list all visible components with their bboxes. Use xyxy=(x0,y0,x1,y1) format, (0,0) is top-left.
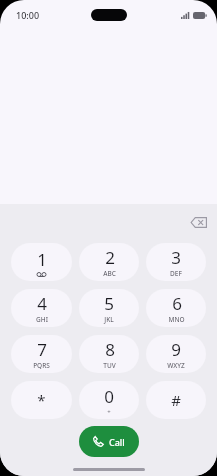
button[interactable]: 3 xyxy=(146,243,206,281)
staticText: MNO xyxy=(168,315,185,324)
staticText: TUV xyxy=(103,361,116,370)
staticText: 0 xyxy=(104,385,114,408)
staticText: 8 xyxy=(105,338,115,361)
button[interactable]: Backspace xyxy=(183,207,213,237)
staticText: GHI xyxy=(36,315,48,324)
button[interactable]: 9 xyxy=(146,335,206,373)
staticText: 6 xyxy=(172,292,182,315)
staticText: ABC xyxy=(103,269,116,278)
button[interactable]: # xyxy=(146,381,206,419)
staticText: Call xyxy=(109,436,125,448)
staticText: + xyxy=(107,408,111,416)
staticText: 7 xyxy=(37,338,47,361)
button[interactable]: 0 xyxy=(79,381,139,419)
staticText: WXYZ xyxy=(167,361,185,370)
staticText: 2 xyxy=(105,246,115,269)
button[interactable]: 1 xyxy=(11,243,72,281)
button[interactable]: Call xyxy=(79,426,139,457)
button[interactable]: * xyxy=(11,381,72,419)
staticText: 10:00 xyxy=(16,9,40,21)
button[interactable]: 4 xyxy=(11,289,72,327)
staticText: * xyxy=(37,390,46,410)
staticText: 4 xyxy=(37,292,47,315)
button[interactable]: 6 xyxy=(146,289,206,327)
button[interactable]: 5 xyxy=(79,289,139,327)
staticText: DEF xyxy=(170,269,182,278)
staticText: 9 xyxy=(171,338,181,361)
staticText: # xyxy=(171,390,181,410)
button[interactable]: 7 xyxy=(11,335,72,373)
button[interactable]: 8 xyxy=(79,335,139,373)
staticText: JKL xyxy=(104,315,114,324)
button[interactable]: 2 xyxy=(79,243,139,281)
staticText: 1 xyxy=(37,248,47,271)
staticText: 5 xyxy=(104,292,114,315)
staticText: 3 xyxy=(171,246,181,269)
staticText: PQRS xyxy=(33,361,50,370)
